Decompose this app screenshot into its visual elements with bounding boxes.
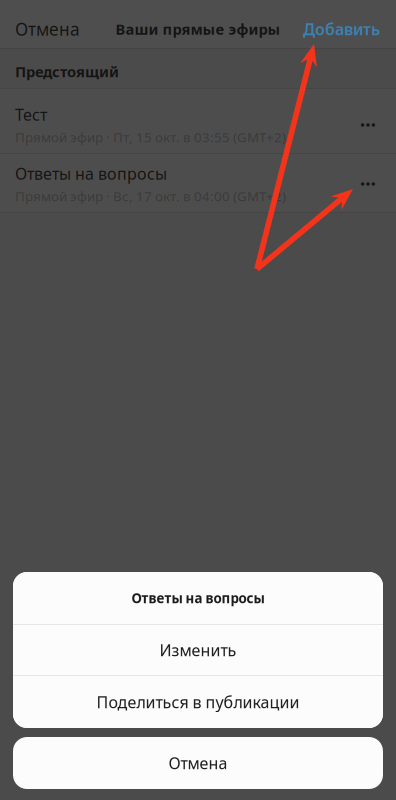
staticText: Отмена [168, 752, 227, 774]
staticText: Отмена [15, 17, 80, 40]
staticText: Прямой эфир · Вс, 17 окт. в 04:00 (GMT+2… [15, 187, 286, 205]
staticText: Тест [15, 104, 47, 125]
button[interactable]: Изменить [13, 625, 383, 675]
button[interactable]: Ответы на вопросы [13, 572, 383, 624]
button[interactable]: Поделиться в публикации [13, 676, 383, 728]
staticText: Ответы на вопросы [131, 589, 264, 607]
staticText: Предстоящий [15, 62, 119, 81]
button[interactable]: Отмена [0, 0, 95, 48]
staticText: Поделиться в публикации [96, 691, 299, 713]
staticText: Добавить [303, 18, 380, 40]
button[interactable]: Дополнительно [345, 156, 391, 212]
staticText: Изменить [159, 639, 236, 661]
staticText: Ваши прямые эфиры [115, 19, 280, 39]
button[interactable]: Дополнительно [345, 97, 391, 153]
staticText: Ответы на вопросы [15, 163, 167, 184]
staticText: Прямой эфир · Пт, 15 окт. в 03:55 (GMT+2… [15, 128, 286, 146]
button[interactable]: Отмена [13, 737, 383, 789]
button[interactable]: Добавить [287, 0, 396, 48]
